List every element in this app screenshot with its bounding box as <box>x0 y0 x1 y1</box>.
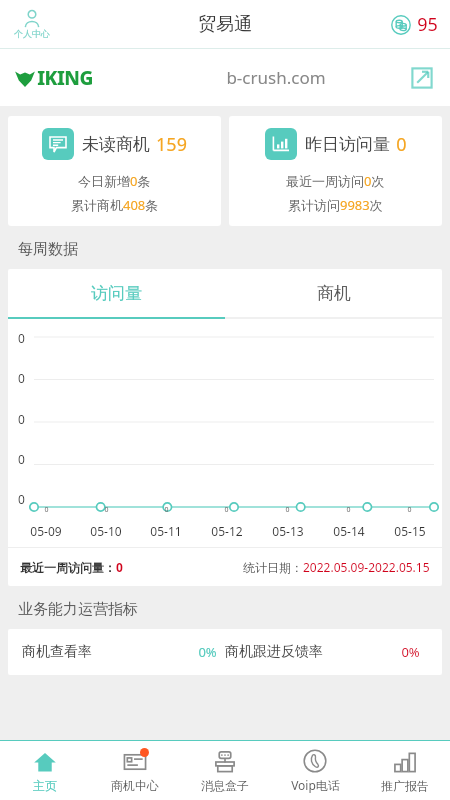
staticText: 0 <box>285 505 290 515</box>
staticText: 每周数据 <box>18 240 78 259</box>
staticText: Voip电话 <box>291 777 340 793</box>
staticText: 0 <box>18 330 25 346</box>
button[interactable]: 未读商机 <box>8 116 221 226</box>
staticText: 商机 <box>317 283 351 304</box>
staticText: 0 <box>164 505 169 515</box>
button[interactable]: 个人中心 <box>14 10 50 39</box>
staticText: 商机中心 <box>111 778 159 793</box>
button[interactable]: 主页 <box>0 741 90 800</box>
staticText: 消息盒子 <box>201 778 249 793</box>
staticText: 0% <box>401 643 420 661</box>
staticText: 0 <box>396 132 407 157</box>
staticText: 0 <box>18 370 25 386</box>
staticText: 0 <box>44 505 49 515</box>
staticText: 个人中心 <box>14 28 50 39</box>
button[interactable]: Voip电话 <box>270 741 360 800</box>
staticText: 今日新增0条 <box>78 172 151 190</box>
staticText: 主页 <box>33 778 57 793</box>
staticText: 0 <box>18 411 25 427</box>
staticText: 统计日期：2022.05.09-2022.05.15 <box>243 559 430 575</box>
button[interactable]: 商机 <box>225 269 442 317</box>
button[interactable]: 访问量 <box>8 269 225 317</box>
staticText: 95 <box>417 12 438 37</box>
staticText: 0 <box>104 505 109 515</box>
button[interactable]: 积分 <box>391 12 438 37</box>
staticText: 访问量 <box>91 283 142 304</box>
button[interactable]: 消息盒子 <box>180 741 270 800</box>
staticText: 05-10 <box>90 523 122 539</box>
button[interactable]: 打开网站 <box>408 64 436 92</box>
staticText: 最近一周访问量：0 <box>20 559 123 575</box>
staticText: 最近一周访问0次 <box>286 172 385 190</box>
button[interactable]: 推广报告 <box>360 741 450 800</box>
staticText: 0 <box>224 505 229 515</box>
staticText: 业务能力运营指标 <box>18 600 138 619</box>
staticText: 05-11 <box>150 523 182 539</box>
staticText: 0 <box>407 505 412 515</box>
staticText: 05-13 <box>272 523 304 539</box>
staticText: 05-15 <box>394 523 426 539</box>
staticText: 159 <box>156 132 187 157</box>
staticText: 昨日访问量 <box>305 134 390 155</box>
staticText: 05-12 <box>211 523 243 539</box>
button[interactable]: 商机中心 <box>90 741 180 800</box>
staticText: 0 <box>346 505 351 515</box>
staticText: b-crush.com <box>226 66 326 89</box>
staticText: 0% <box>198 643 217 661</box>
staticText: 商机跟进反馈率 <box>225 643 323 661</box>
staticText: 贸易通 <box>198 13 252 36</box>
staticText: 0 <box>18 451 25 467</box>
staticText: 未读商机 <box>82 134 150 155</box>
staticText: 商机查看率 <box>22 643 92 661</box>
staticText: IKING <box>37 65 93 91</box>
button[interactable]: 昨日访问量 <box>229 116 442 226</box>
staticText: 累计访问9983次 <box>288 196 383 214</box>
staticText: 05-14 <box>333 523 365 539</box>
staticText: 05-09 <box>30 523 62 539</box>
staticText: 推广报告 <box>381 778 429 793</box>
staticText: 累计商机408条 <box>71 196 159 214</box>
staticText: 0 <box>18 491 25 507</box>
